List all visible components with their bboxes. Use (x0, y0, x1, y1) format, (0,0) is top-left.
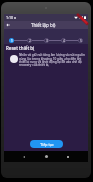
staticText: Thiết lập bộ (31, 22, 56, 28)
button[interactable]: Recent apps (62, 151, 74, 162)
staticText: 1 (11, 39, 13, 43)
button[interactable]: 2 (27, 38, 32, 43)
button[interactable]: 4 (61, 38, 66, 43)
button[interactable]: Tiếp tục (30, 140, 63, 148)
staticText: Tiếp tục (40, 142, 54, 147)
staticText: 4 (63, 39, 65, 43)
button[interactable]: 1 (9, 38, 14, 43)
button[interactable]: 3 (44, 38, 49, 43)
staticText: Reset thiết bị (6, 45, 35, 51)
staticText: 3 (46, 39, 48, 43)
staticText: 5 (80, 39, 82, 43)
staticText: 2 (29, 39, 31, 43)
button[interactable]: 5 (78, 38, 83, 43)
button[interactable]: Back (4, 21, 12, 29)
staticText: 1:10 (6, 15, 14, 20)
button[interactable] (10, 55, 18, 63)
button[interactable]: Home (40, 151, 52, 162)
staticText: Nhấn và giữ nút tăng âm lượng và nút ngu… (19, 53, 86, 67)
button[interactable]: Back (18, 151, 30, 162)
